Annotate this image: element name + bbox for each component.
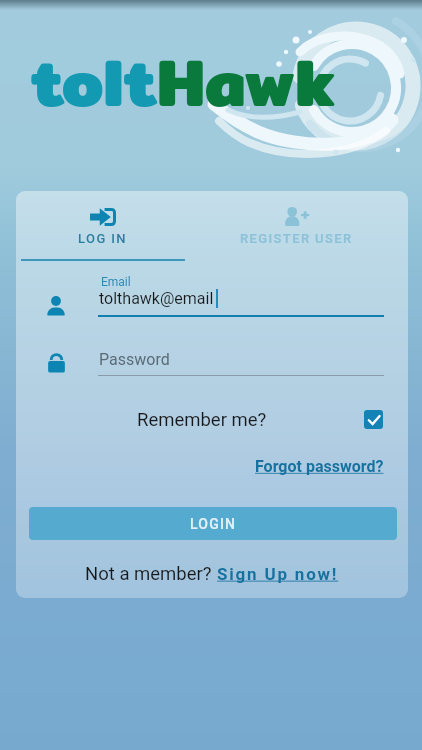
staticText: Hawk [157, 30, 336, 134]
staticText: tolthawk@email [99, 289, 214, 308]
button[interactable]: Forgot password? [255, 457, 384, 476]
staticText: Not a member? [85, 563, 217, 585]
staticText: LOGIN [190, 516, 237, 532]
staticText: tolt [31, 30, 157, 134]
staticText: Remember me? [137, 409, 267, 431]
button[interactable]: LOG IN [21, 203, 185, 261]
staticText: Password [99, 350, 170, 369]
staticText: Forgot password? [255, 457, 384, 476]
button[interactable]: REGISTER USER [196, 203, 396, 261]
staticText: REGISTER USER [240, 231, 353, 246]
staticText: LOG IN [78, 231, 128, 246]
button[interactable]: Sign Up now! [217, 564, 339, 584]
button[interactable]: LOGIN [29, 507, 397, 540]
staticText: Sign Up now! [217, 564, 339, 584]
staticText: Email [101, 275, 131, 289]
button[interactable]: Remember me [364, 410, 383, 429]
